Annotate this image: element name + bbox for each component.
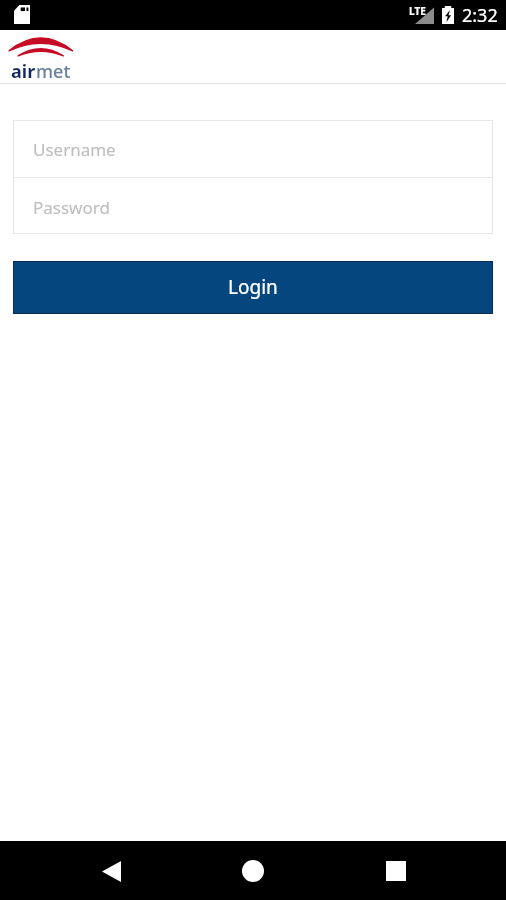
button[interactable]: Username bbox=[13, 120, 493, 177]
staticText: Password bbox=[33, 196, 110, 219]
button[interactable]: Password bbox=[13, 178, 493, 234]
staticText: 2:32 bbox=[462, 3, 498, 28]
staticText: LTE bbox=[409, 4, 426, 18]
button[interactable]: Login bbox=[13, 261, 493, 314]
button[interactable]: Recent apps bbox=[372, 847, 420, 895]
button[interactable]: Back bbox=[87, 847, 135, 895]
button[interactable]: Home bbox=[229, 847, 277, 895]
staticText: air bbox=[11, 59, 36, 84]
staticText: met bbox=[36, 59, 71, 84]
staticText: Login bbox=[228, 274, 278, 300]
other: SD card bbox=[14, 5, 30, 24]
staticText: Username bbox=[33, 138, 116, 161]
